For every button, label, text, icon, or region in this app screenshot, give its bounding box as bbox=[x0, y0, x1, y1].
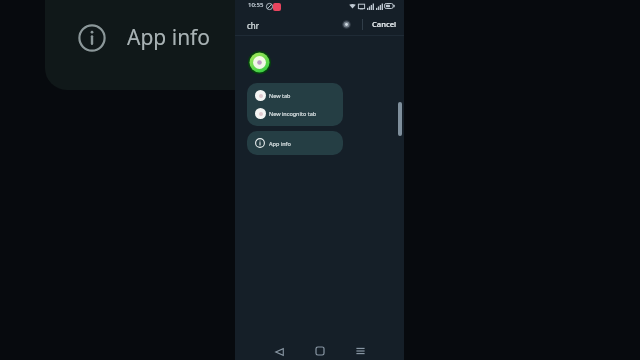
button[interactable]: App info bbox=[247, 131, 343, 155]
button[interactable]: Chrome bbox=[248, 51, 271, 74]
button[interactable]: Back bbox=[269, 342, 289, 360]
staticText: Cancel bbox=[372, 19, 397, 29]
staticText: App info bbox=[127, 23, 211, 52]
staticText: chr bbox=[247, 20, 260, 31]
button[interactable]: Recent apps bbox=[350, 341, 370, 360]
staticText: 10:55 bbox=[248, 1, 264, 9]
button[interactable]: Cancel bbox=[372, 19, 397, 29]
staticText: App info bbox=[269, 140, 291, 147]
button[interactable]: New incognito tab bbox=[247, 105, 343, 122]
button[interactable]: App info bbox=[45, 0, 260, 90]
button[interactable]: Clear search bbox=[342, 20, 351, 29]
button[interactable]: Home bbox=[310, 341, 330, 360]
staticText: New incognito tab bbox=[269, 110, 317, 117]
button[interactable]: New tab bbox=[247, 87, 343, 104]
staticText: New tab bbox=[269, 92, 291, 99]
